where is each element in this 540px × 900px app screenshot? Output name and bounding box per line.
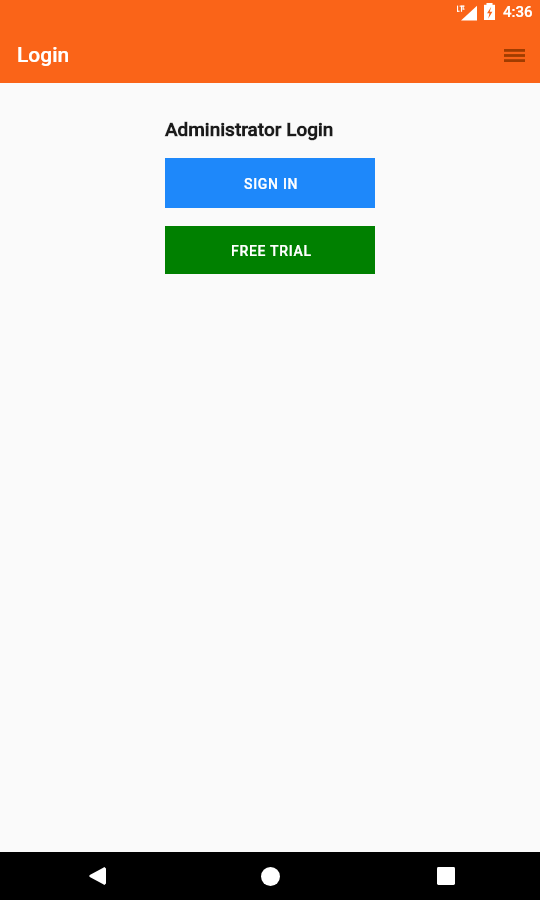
- button[interactable]: Home: [248, 854, 292, 898]
- button[interactable]: Recent apps: [424, 854, 468, 898]
- button[interactable]: Open navigation menu: [494, 35, 534, 75]
- other: Battery charging: [484, 3, 495, 20]
- staticText: Administrator Login: [165, 118, 334, 140]
- staticText: SIGN IN: [244, 176, 299, 192]
- button[interactable]: SIGN IN: [165, 158, 375, 208]
- staticText: 4:36: [503, 3, 533, 21]
- staticText: FREE TRIAL: [231, 243, 312, 259]
- button[interactable]: FREE TRIAL: [165, 226, 375, 274]
- staticText: Login: [17, 43, 70, 68]
- other: Mobile signal LTE: [456, 5, 477, 21]
- button[interactable]: Back: [75, 854, 119, 898]
